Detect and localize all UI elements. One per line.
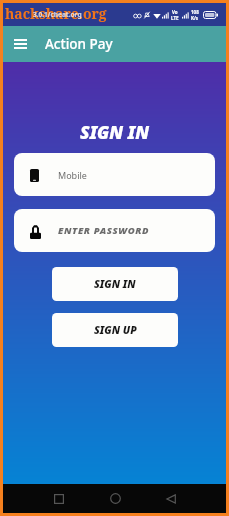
button[interactable]: Back <box>143 484 199 513</box>
button[interactable]: SIGN UP <box>52 313 178 347</box>
staticText: LTE <box>171 15 179 21</box>
staticText: Action Pay <box>45 35 113 53</box>
staticText: hackshare.org <box>5 4 107 23</box>
staticText: SIGN UP <box>94 323 137 337</box>
staticText: 108 <box>191 9 199 15</box>
button[interactable]: Mobile <box>14 153 215 196</box>
button[interactable]: SIGN IN <box>52 267 178 301</box>
staticText: K/s <box>191 15 199 21</box>
staticText: Vo <box>172 9 178 15</box>
staticText: Mobile <box>58 169 87 181</box>
staticText: 3.0.1/cheat.org <box>33 10 82 19</box>
button[interactable]: Home <box>87 484 143 513</box>
button[interactable]: Open navigation menu <box>3 26 37 62</box>
staticText: ENTER PASSWORD <box>58 224 150 237</box>
staticText: SIGN IN <box>94 277 136 291</box>
button[interactable]: ENTER PASSWORD <box>14 209 215 252</box>
button[interactable]: Recent apps <box>31 484 87 513</box>
staticText: SIGN IN <box>80 120 149 144</box>
